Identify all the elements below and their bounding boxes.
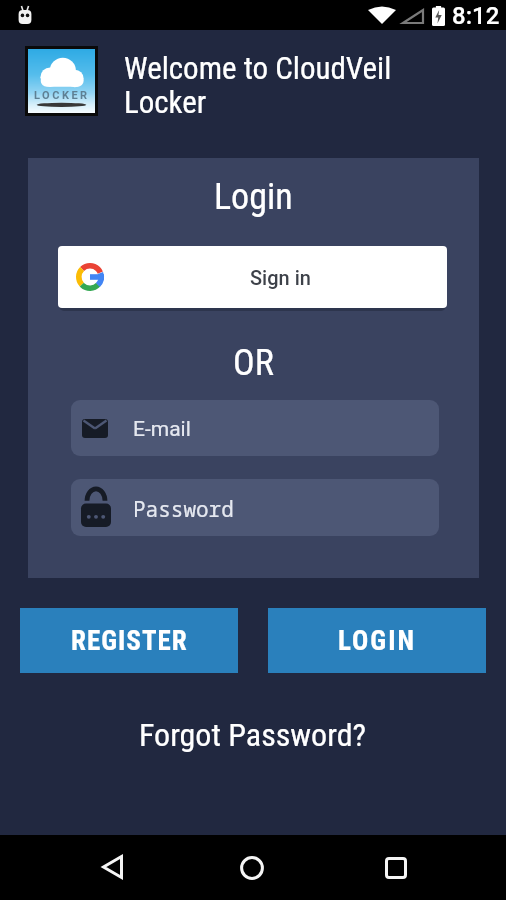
staticText: Password <box>133 495 234 524</box>
button[interactable]: LOCKER <box>28 49 95 113</box>
button[interactable]: REGISTER <box>20 608 238 673</box>
button[interactable]: Password <box>71 479 439 536</box>
button[interactable] <box>385 857 407 879</box>
button[interactable]: Sign in <box>58 246 447 308</box>
button[interactable] <box>240 856 264 880</box>
staticText: LOGIN <box>338 625 417 657</box>
staticText: E-mail <box>133 417 191 442</box>
staticText: 8:12 <box>452 2 500 30</box>
staticText: LOCKER <box>34 89 90 102</box>
button[interactable]: E-mail <box>71 400 439 456</box>
button[interactable]: LOGIN <box>268 608 486 673</box>
staticText: Login <box>214 176 293 218</box>
staticText: Sign in <box>250 266 311 289</box>
staticText: REGISTER <box>71 625 188 657</box>
staticText: OR <box>233 342 274 384</box>
staticText: Welcome to CloudVeil Locker <box>124 50 392 120</box>
button[interactable]: Forgot Password? <box>139 716 367 754</box>
button[interactable] <box>102 855 123 879</box>
